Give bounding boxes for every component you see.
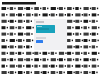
button[interactable]: Confirm — [36, 40, 43, 43]
button[interactable]: Promo banner — [36, 25, 55, 33]
